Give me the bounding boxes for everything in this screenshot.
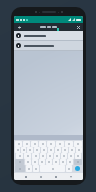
button[interactable]: Key xyxy=(56,141,64,147)
button[interactable]: Search xyxy=(73,165,82,172)
button[interactable]: Key xyxy=(15,159,24,165)
button[interactable]: Key xyxy=(15,147,20,153)
button[interactable]: Clear search xyxy=(75,24,81,30)
button[interactable]: Key xyxy=(74,141,82,147)
button[interactable]: Key xyxy=(39,159,45,165)
button[interactable]: Key xyxy=(74,159,82,165)
button[interactable]: Back xyxy=(16,24,22,30)
button[interactable]: Key xyxy=(16,153,23,159)
button[interactable]: Key xyxy=(61,153,67,159)
button[interactable]: Recent apps xyxy=(53,174,59,180)
button[interactable]: Key xyxy=(53,159,59,165)
button[interactable]: Key xyxy=(34,147,40,153)
button[interactable]: Key xyxy=(39,141,46,147)
button[interactable]: Key xyxy=(15,141,22,147)
button[interactable]: Back xyxy=(23,174,29,180)
button[interactable]: Key xyxy=(40,153,46,159)
button[interactable]: Key xyxy=(31,141,38,147)
button[interactable]: Key xyxy=(41,147,47,153)
button[interactable] xyxy=(14,41,83,50)
button[interactable]: Key xyxy=(69,147,75,153)
button[interactable]: Key xyxy=(23,141,30,147)
button[interactable]: Key xyxy=(65,141,73,147)
button[interactable]: Key xyxy=(66,165,72,172)
button[interactable]: Key xyxy=(47,141,55,147)
button[interactable]: Key xyxy=(55,147,61,153)
button[interactable]: Key xyxy=(54,153,60,159)
button[interactable]: Key xyxy=(68,153,74,159)
button[interactable]: Hide keyboard xyxy=(68,174,74,180)
button[interactable]: Key xyxy=(46,159,52,165)
button[interactable]: Key xyxy=(67,159,73,165)
button[interactable]: Key xyxy=(25,159,31,165)
button[interactable]: Key xyxy=(76,147,82,153)
button[interactable]: Key xyxy=(60,159,66,165)
button[interactable]: Key xyxy=(21,147,26,153)
button[interactable]: Key xyxy=(47,153,53,159)
button[interactable]: Key xyxy=(27,147,33,153)
button[interactable]: Key xyxy=(15,165,25,172)
button[interactable] xyxy=(14,31,83,40)
button[interactable]: Key xyxy=(24,153,31,159)
button[interactable]: Key xyxy=(75,153,81,159)
button[interactable]: Key xyxy=(32,159,38,165)
button[interactable]: Key xyxy=(26,165,32,172)
button[interactable]: Key xyxy=(33,165,39,172)
button[interactable]: Key xyxy=(32,153,39,159)
button[interactable]: Key xyxy=(62,147,68,153)
button[interactable]: Key xyxy=(40,165,65,172)
button[interactable]: Home xyxy=(38,174,44,180)
button[interactable]: Key xyxy=(48,147,54,153)
button[interactable] xyxy=(40,26,57,28)
